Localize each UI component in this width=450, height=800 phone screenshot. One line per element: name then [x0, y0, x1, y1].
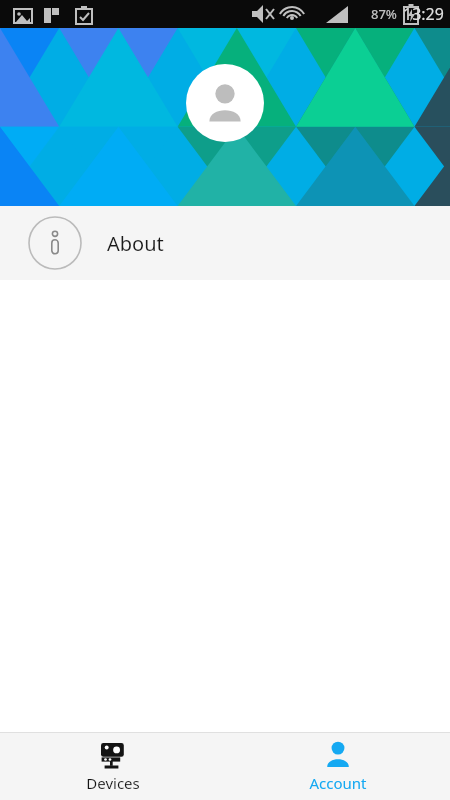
button[interactable]: Account [225, 733, 450, 800]
button[interactable]: Devices [0, 733, 225, 800]
staticText: Account [309, 773, 367, 793]
staticText: Devices [86, 773, 140, 793]
button[interactable]: Profile photo [186, 64, 264, 142]
staticText: About [107, 230, 164, 257]
button[interactable]: About [0, 206, 450, 280]
staticText: 87% [371, 5, 397, 23]
staticText: 13:29 [403, 3, 444, 25]
